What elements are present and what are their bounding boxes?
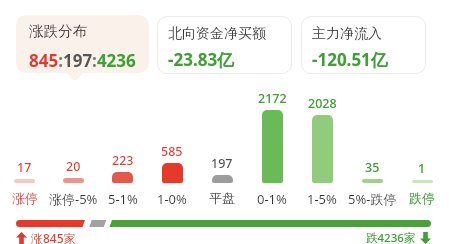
staticText: 35	[365, 159, 380, 176]
button[interactable]: 涨停-5%	[49, 190, 98, 208]
staticText: 0-1%	[257, 190, 287, 208]
staticText: 平盘	[209, 190, 235, 206]
staticText: 1-0%	[157, 190, 187, 208]
staticText: 17	[17, 159, 32, 176]
staticText: -120.51亿	[312, 48, 388, 71]
staticText: 跌4236家	[366, 230, 416, 244]
button[interactable]: 0-1%	[247, 190, 297, 208]
staticText: 北向资金净买额	[168, 25, 266, 43]
staticText: 845:197:4236	[29, 49, 136, 72]
button[interactable]: 主力净流入	[301, 16, 426, 74]
staticText: 1-5%	[307, 190, 337, 208]
staticText: 跌停	[409, 190, 435, 206]
button[interactable]: 跌停	[397, 190, 447, 206]
button[interactable]: 跌4236家	[366, 230, 431, 244]
button[interactable]: 5%-跌停	[347, 190, 397, 208]
staticText: 涨停	[12, 190, 38, 206]
staticText: 主力净流入	[312, 25, 382, 43]
staticText: 2028	[308, 95, 337, 112]
staticText: 涨停-5%	[49, 190, 98, 208]
staticText: 1	[418, 160, 426, 177]
button[interactable]: 1-5%	[297, 190, 347, 208]
staticText: 涨跌分布	[29, 22, 87, 40]
staticText: 20	[66, 158, 81, 175]
staticText: 223	[112, 152, 134, 169]
staticText: 197	[211, 155, 233, 172]
button[interactable]: 5-1%	[98, 190, 147, 208]
staticText: 5%-跌停	[348, 190, 397, 208]
button[interactable]: 北向资金净买额	[157, 16, 292, 74]
button[interactable]: 平盘	[197, 190, 247, 206]
staticText: -23.83亿	[168, 48, 235, 71]
staticText: 2172	[258, 90, 287, 107]
staticText: 涨845家	[31, 230, 76, 244]
button[interactable]: 涨停	[0, 190, 49, 206]
button[interactable]: 涨845家	[16, 230, 76, 244]
staticText: 585	[161, 143, 183, 160]
button[interactable]: 涨跌分布	[16, 15, 149, 73]
staticText: 5-1%	[108, 190, 138, 208]
button[interactable]: 1-0%	[147, 190, 197, 208]
